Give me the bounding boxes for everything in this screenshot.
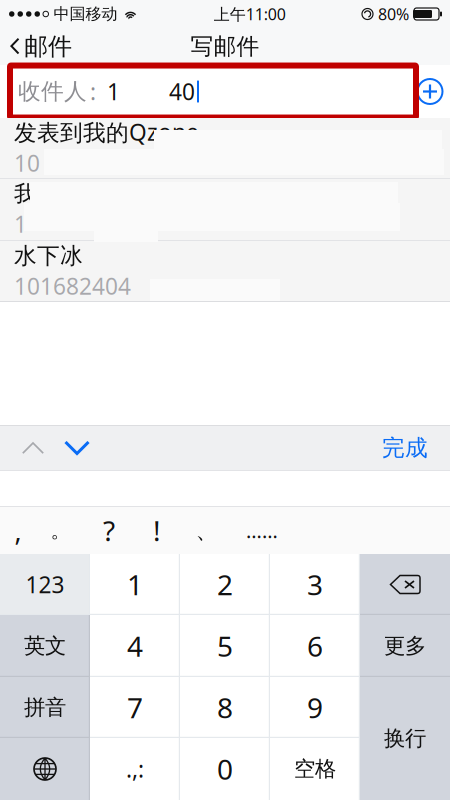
staticText: 更多 xyxy=(384,633,426,659)
staticText: 拼音 xyxy=(24,694,66,721)
button[interactable]: 英文 xyxy=(0,615,90,677)
staticText: 写邮件 xyxy=(190,33,259,60)
staticText: 4 xyxy=(127,627,143,665)
button[interactable]: Add recipient xyxy=(417,78,443,104)
staticText: 40 xyxy=(169,76,195,106)
staticText: 1 xyxy=(107,76,120,106)
staticText: 5 xyxy=(217,627,233,665)
staticText: 邮件 xyxy=(24,32,72,61)
staticText: 1 xyxy=(14,209,27,239)
button[interactable]: 8 xyxy=(180,677,270,738)
staticText: ! xyxy=(153,512,161,549)
button[interactable]: 5 xyxy=(180,615,270,677)
button[interactable]: ! xyxy=(133,507,181,554)
button[interactable]: 。 xyxy=(36,507,85,554)
staticText: 完成 xyxy=(382,434,428,462)
staticText: 空格 xyxy=(294,756,336,782)
staticText: 7 xyxy=(127,689,143,726)
button[interactable]: Delete xyxy=(360,554,450,615)
button[interactable]: Previous field xyxy=(11,426,55,470)
staticText: 收件人 xyxy=(18,78,87,105)
staticText: .,: xyxy=(126,754,144,784)
staticText: 英文 xyxy=(24,633,66,659)
button[interactable]: …… xyxy=(233,507,291,554)
button[interactable]: 更多 xyxy=(360,615,450,677)
staticText: 123 xyxy=(25,569,64,599)
button[interactable]: Next field xyxy=(55,426,99,470)
button[interactable]: 6 xyxy=(270,615,360,677)
button[interactable]: , xyxy=(0,507,36,554)
staticText: 。 xyxy=(50,518,70,543)
button[interactable]: 完成 xyxy=(374,426,436,470)
staticText: 水下冰 xyxy=(14,242,83,270)
staticText: 3 xyxy=(307,566,323,603)
staticText: 80% xyxy=(378,3,409,25)
button[interactable]: Switch keyboard xyxy=(0,738,90,800)
button[interactable]: ? xyxy=(85,507,133,554)
staticText: , xyxy=(14,513,21,548)
button[interactable]: 发表到我的Qzone xyxy=(0,117,450,178)
staticText: 我的 xyxy=(14,180,60,208)
staticText: 发表到我的Qzone xyxy=(14,117,199,147)
staticText: 8 xyxy=(217,689,233,726)
staticText: 中国移动 xyxy=(53,4,117,24)
staticText: 10 xyxy=(14,148,40,178)
button[interactable]: 1 xyxy=(90,554,180,615)
button[interactable]: 9 xyxy=(270,677,360,738)
button[interactable]: 0 xyxy=(180,738,270,800)
button[interactable]: 空格 xyxy=(270,738,360,800)
button[interactable]: 4 xyxy=(90,615,180,677)
staticText: ? xyxy=(103,512,115,549)
staticText: 换行 xyxy=(384,725,426,752)
button[interactable]: 换行 xyxy=(360,677,450,800)
button[interactable]: 水下冰 xyxy=(0,241,450,302)
staticText: 1 xyxy=(127,566,143,603)
button[interactable]: 、 xyxy=(181,507,233,554)
staticText: 9 xyxy=(307,689,323,726)
staticText: 6 xyxy=(307,627,323,665)
staticText: 2 xyxy=(217,566,233,603)
button[interactable]: 123 xyxy=(0,554,90,615)
button[interactable]: 我的 xyxy=(0,179,450,240)
staticText: 、 xyxy=(195,517,218,544)
button[interactable]: 拼音 xyxy=(0,677,90,738)
button[interactable]: 邮件 xyxy=(0,28,82,65)
button[interactable]: 3 xyxy=(270,554,360,615)
staticText: : xyxy=(90,76,96,106)
button[interactable]: .,: xyxy=(90,738,180,800)
button[interactable]: 7 xyxy=(90,677,180,738)
staticText: …… xyxy=(246,517,278,544)
button[interactable]: 2 xyxy=(180,554,270,615)
staticText: 0 xyxy=(217,750,233,788)
staticText: 101682404 xyxy=(14,271,131,301)
staticText: 上午11:00 xyxy=(214,3,286,25)
